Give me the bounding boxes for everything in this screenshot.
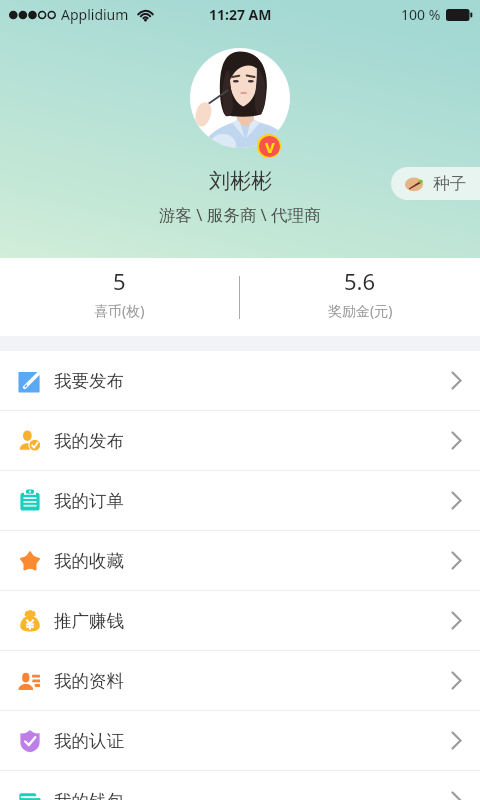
staticText: 5.6 [344,266,376,296]
button[interactable]: 种子 [391,167,480,200]
staticText: 我的收藏 [54,550,124,572]
staticText: 推广赚钱 [54,610,124,632]
button[interactable]: 我的订单 [0,471,480,530]
staticText: 我的钱包 [54,790,124,800]
button[interactable]: Profile photo [190,48,290,148]
staticText: V [265,137,275,157]
button[interactable]: 5 [0,258,239,336]
button[interactable]: 我的钱包 [0,771,480,800]
button[interactable]: 我的收藏 [0,531,480,590]
staticText: 100 % [401,5,441,24]
button[interactable]: 我的发布 [0,411,480,470]
staticText: 5 [113,266,126,296]
button[interactable]: 5.6 [240,258,480,336]
button[interactable]: 我要发布 [0,351,480,410]
staticText: Applidium [61,5,129,24]
staticText: 我的发布 [54,430,124,452]
staticText: 游客 \ 服务商 \ 代理商 [159,203,321,226]
staticText: 我要发布 [54,370,124,392]
staticText: 我的订单 [54,490,124,512]
staticText: 我的资料 [54,670,124,692]
staticText: 奖励金(元) [328,301,393,320]
button[interactable]: 推广赚钱 [0,591,480,650]
staticText: 刘彬彬 [209,168,272,194]
button[interactable]: 我的资料 [0,651,480,710]
staticText: 种子 [433,173,466,194]
button[interactable]: 我的认证 [0,711,480,770]
staticText: 我的认证 [54,730,124,752]
staticText: 喜币(枚) [94,301,145,320]
staticText: 11:27 AM [209,5,272,24]
